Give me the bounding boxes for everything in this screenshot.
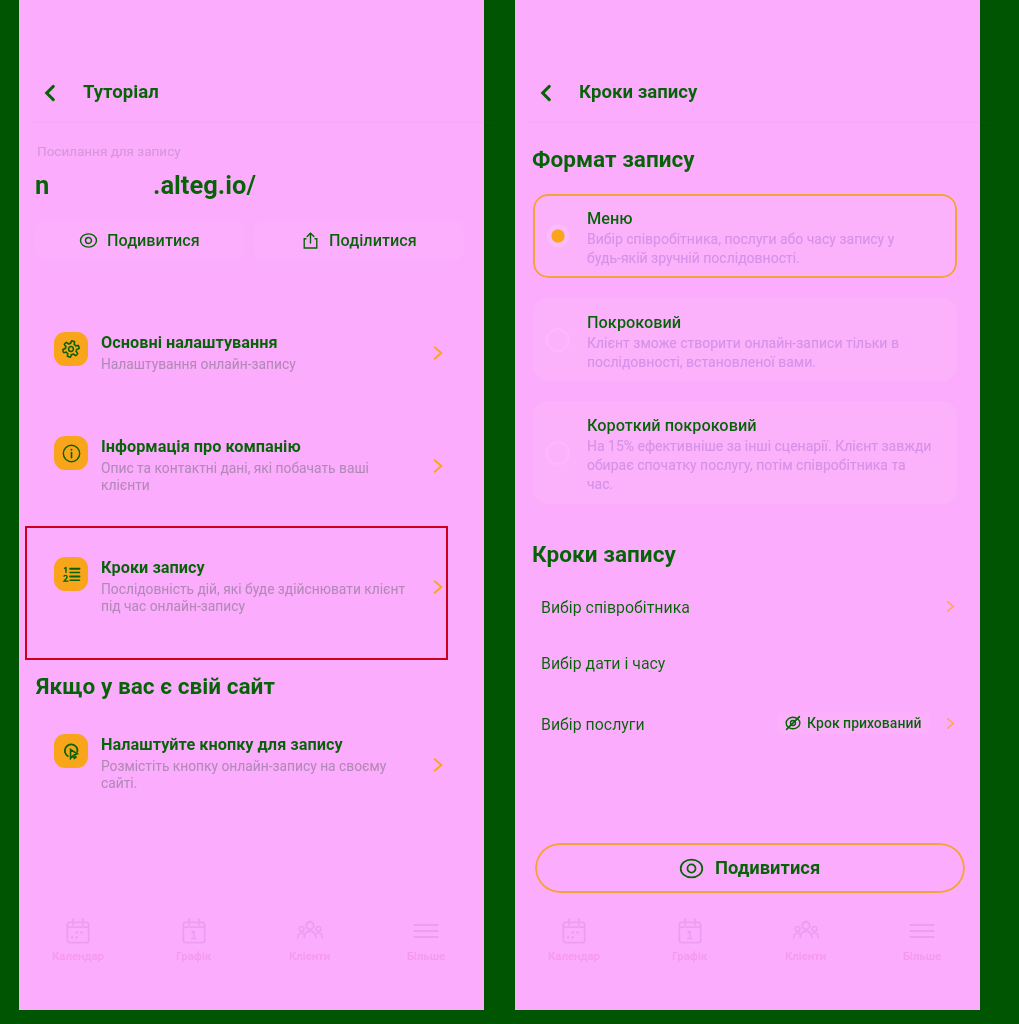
button[interactable]: Подивитися [535, 843, 965, 893]
button[interactable]: Меню [533, 194, 957, 278]
button[interactable]: Клієнти [748, 917, 864, 979]
button[interactable]: Back [523, 70, 569, 116]
staticText: На 15% ефективніше за інші сценарії. Клі… [587, 438, 935, 493]
button[interactable]: Графік [632, 917, 748, 979]
staticText: Кроки запису [532, 541, 676, 567]
button[interactable]: Кроки запису [19, 549, 484, 629]
button[interactable]: Більше [864, 917, 980, 979]
staticText: Розмістіть кнопку онлайн-запису на своєм… [101, 758, 391, 791]
button[interactable]: Вибір співробітника [515, 586, 980, 632]
staticText: Графік [176, 950, 212, 963]
staticText: .alteg.io/ [153, 170, 256, 200]
button[interactable]: Back [27, 70, 73, 116]
staticText: Клієнт зможе створити онлайн-записи тіль… [587, 335, 909, 371]
staticText: Туторіал [83, 81, 159, 103]
staticText: Графік [672, 950, 708, 963]
staticText: Поділитися [329, 231, 417, 250]
staticText: Формат запису [532, 146, 695, 172]
staticText: Послідовність дій, які буде здійснювати … [101, 581, 409, 614]
button[interactable]: Основні налаштування [19, 324, 484, 382]
staticText: Крок прихований [807, 715, 922, 731]
button[interactable]: Інформація про компанію [19, 428, 484, 486]
button[interactable]: Налаштуйте кнопку для запису [19, 726, 484, 784]
button[interactable]: Графік [136, 917, 252, 979]
staticText: Клієнти [785, 950, 827, 963]
staticText: Короткий покроковий [587, 416, 757, 435]
button[interactable]: Більше [368, 917, 484, 979]
staticText: Вибір співробітника, послуги або часу за… [587, 231, 905, 267]
staticText: Календар [52, 950, 104, 963]
staticText: Якщо у вас є свій сайт [36, 673, 275, 699]
staticText: Опис та контактні дані, які побачать ваш… [101, 460, 391, 493]
staticText: Подивитися [107, 231, 200, 250]
button[interactable]: Вибір послуги [515, 703, 980, 749]
button[interactable]: Календар [19, 917, 136, 979]
button[interactable]: Вибір дати і часу [515, 642, 980, 688]
staticText: Більше [903, 950, 942, 963]
button[interactable]: Поділитися [254, 221, 464, 260]
staticText: Налаштуйте кнопку для запису [101, 735, 343, 754]
staticText: Кроки запису [101, 558, 205, 577]
button[interactable]: Клієнти [252, 917, 368, 979]
staticText: Посилання для запису [37, 143, 181, 159]
staticText: Налаштування онлайн-запису [101, 356, 401, 372]
staticText: Покроковий [587, 313, 682, 332]
button[interactable]: Подивитися [35, 221, 244, 260]
button[interactable]: Календар [515, 917, 632, 979]
staticText: n [35, 170, 50, 200]
staticText: Інформація про компанію [101, 437, 301, 456]
staticText: Кроки запису [579, 81, 698, 103]
staticText: Вибір співробітника [541, 598, 690, 617]
staticText: Вибір дати і часу [541, 654, 666, 673]
staticText: Календар [548, 950, 600, 963]
staticText: Основні налаштування [101, 333, 278, 352]
staticText: Клієнти [289, 950, 331, 963]
staticText: Вибір послуги [541, 715, 645, 734]
staticText: Меню [587, 209, 633, 228]
staticText: Подивитися [715, 857, 821, 879]
staticText: Більше [407, 950, 446, 963]
button[interactable]: Покроковий [533, 298, 957, 381]
button[interactable]: Короткий покроковий [533, 401, 957, 504]
